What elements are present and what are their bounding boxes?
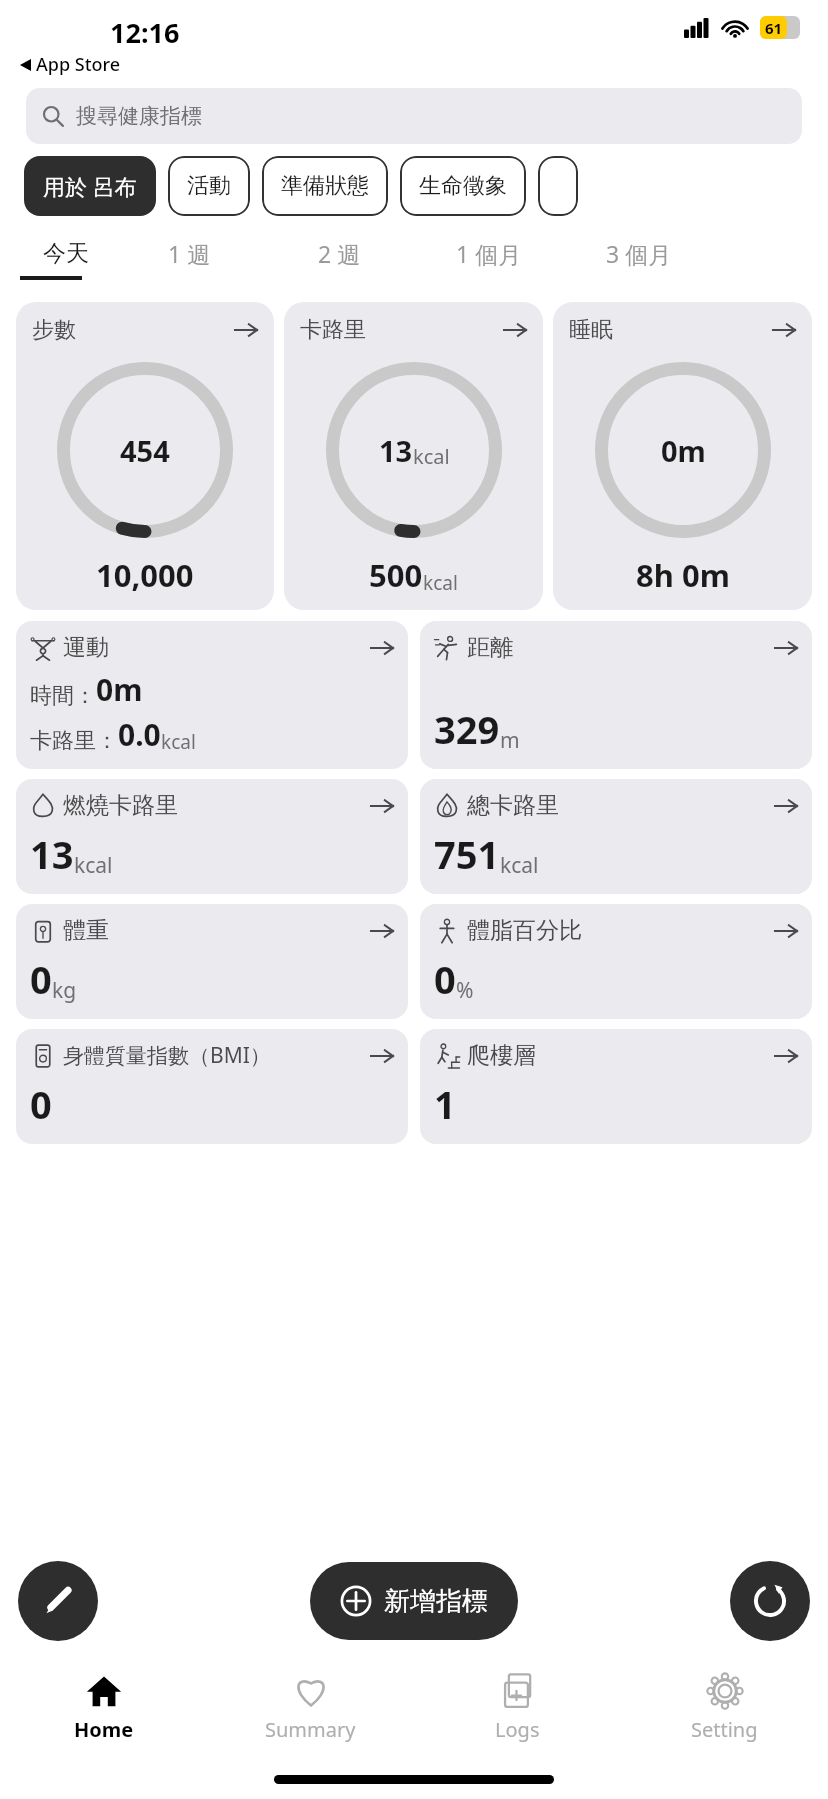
staticText: 329 bbox=[434, 703, 500, 755]
button[interactable]: 準備狀態 bbox=[262, 156, 388, 216]
staticText: 2 週 bbox=[318, 238, 361, 269]
button[interactable]: 1 個月 bbox=[414, 230, 564, 276]
staticText: 0m bbox=[96, 669, 143, 710]
staticText: 準備狀態 bbox=[281, 172, 369, 200]
staticText: Summary bbox=[265, 1716, 356, 1743]
staticText: 0.0 bbox=[118, 714, 161, 755]
staticText: 13 bbox=[379, 431, 413, 470]
button[interactable]: Summary bbox=[207, 1655, 414, 1759]
staticText: 61 bbox=[765, 18, 783, 38]
button[interactable]: 距離 bbox=[420, 621, 812, 769]
staticText: kcal bbox=[423, 570, 458, 596]
staticText: Logs bbox=[495, 1716, 540, 1743]
staticText: 爬樓層 bbox=[467, 1041, 536, 1070]
staticText: % bbox=[456, 976, 474, 1005]
button[interactable]: 活動 bbox=[168, 156, 250, 216]
staticText: 用於 呂布 bbox=[43, 171, 137, 201]
staticText: 睡眠 bbox=[569, 316, 613, 344]
button[interactable]: Edit bbox=[18, 1561, 98, 1641]
button[interactable]: 搜尋健康指標 bbox=[26, 88, 802, 144]
staticText: kg bbox=[52, 976, 77, 1005]
button[interactable]: 燃燒卡路里 bbox=[16, 779, 408, 894]
staticText: 今天 bbox=[43, 239, 89, 268]
staticText: 1 個月 bbox=[456, 238, 522, 269]
button[interactable]: 體脂百分比 bbox=[420, 904, 812, 1019]
button[interactable]: 爬樓層 bbox=[420, 1029, 812, 1144]
button[interactable]: Home bbox=[0, 1655, 207, 1759]
staticText: 燃燒卡路里 bbox=[63, 791, 178, 820]
button[interactable]: 3 個月 bbox=[564, 230, 714, 276]
staticText: 活動 bbox=[187, 172, 231, 200]
staticText: Setting bbox=[691, 1716, 758, 1743]
button[interactable]: Logs bbox=[414, 1655, 621, 1759]
staticText: 1 bbox=[434, 1078, 456, 1130]
staticText: 搜尋健康指標 bbox=[76, 103, 202, 129]
button[interactable]: 今天 bbox=[18, 230, 114, 276]
staticText: 0 bbox=[434, 953, 456, 1005]
staticText: App Store bbox=[36, 52, 121, 77]
button[interactable]: Setting bbox=[621, 1655, 828, 1759]
button[interactable]: 體重 bbox=[16, 904, 408, 1019]
button[interactable]: 睡眠 bbox=[553, 302, 812, 610]
staticText: m bbox=[500, 726, 520, 755]
staticText: kcal bbox=[413, 443, 450, 470]
button[interactable]: 總卡路里 bbox=[420, 779, 812, 894]
staticText: 體重 bbox=[63, 916, 109, 945]
staticText: 10,000 bbox=[96, 554, 194, 596]
staticText: 卡路里： bbox=[30, 727, 118, 755]
staticText: 3 個月 bbox=[606, 238, 672, 269]
staticText: 步數 bbox=[32, 316, 76, 344]
button[interactable]: 新增指標 bbox=[310, 1562, 518, 1640]
staticText: 1 週 bbox=[168, 238, 211, 269]
button[interactable]: Refresh bbox=[730, 1561, 810, 1641]
staticText: 0 bbox=[30, 1078, 52, 1130]
staticText: kcal bbox=[74, 851, 113, 880]
staticText: 454 bbox=[120, 431, 170, 470]
staticText: 0 bbox=[30, 953, 52, 1005]
button[interactable] bbox=[538, 156, 578, 216]
staticText: 500 bbox=[369, 554, 423, 596]
staticText: kcal bbox=[500, 851, 539, 880]
staticText: 0m bbox=[661, 431, 706, 470]
staticText: Home bbox=[74, 1716, 134, 1743]
staticText: 生命徵象 bbox=[419, 172, 507, 200]
button[interactable]: 用於 呂布 bbox=[24, 156, 156, 216]
staticText: 8h 0m bbox=[636, 554, 730, 596]
staticText: 時間： bbox=[30, 682, 96, 710]
staticText: 12:16 bbox=[110, 14, 180, 51]
button[interactable]: 2 週 bbox=[264, 230, 414, 276]
staticText: 13 bbox=[30, 828, 74, 880]
button[interactable]: 運動 bbox=[16, 621, 408, 769]
staticText: 運動 bbox=[63, 633, 109, 662]
button[interactable]: 卡路里 bbox=[284, 302, 543, 610]
staticText: 距離 bbox=[467, 633, 513, 662]
staticText: 體脂百分比 bbox=[467, 916, 582, 945]
button[interactable]: 步數 bbox=[16, 302, 274, 610]
button[interactable]: 身體質量指數（BMI） bbox=[16, 1029, 408, 1144]
staticText: 新增指標 bbox=[384, 1585, 488, 1618]
staticText: 卡路里 bbox=[300, 316, 366, 344]
button[interactable]: 1 週 bbox=[114, 230, 264, 276]
staticText: 身體質量指數（BMI） bbox=[63, 1041, 271, 1070]
staticText: 751 bbox=[434, 828, 500, 880]
staticText: 總卡路里 bbox=[467, 791, 559, 820]
button[interactable]: 生命徵象 bbox=[400, 156, 526, 216]
staticText: kcal bbox=[161, 729, 196, 755]
